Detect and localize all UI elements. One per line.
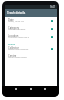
- button[interactable]: Location: [5, 33, 57, 41]
- staticText: Centre: [8, 54, 17, 58]
- staticText: Status: [8, 42, 16, 45]
- staticText: Mixed recyclables: [8, 28, 26, 31]
- staticText: Location: [8, 34, 19, 38]
- staticText: 9:41: [50, 5, 56, 9]
- staticText: Collector: [8, 46, 19, 50]
- button[interactable]: Collector: [5, 45, 57, 53]
- staticText: Trash details: [7, 11, 26, 15]
- staticText: North Valley facility: [8, 56, 27, 59]
- staticText: Green Earth Services: [8, 48, 29, 51]
- staticText: 1234 Elm Street Apt 5: [8, 36, 30, 39]
- staticText: Today, 10:45 AM: [8, 20, 24, 23]
- button[interactable]: Date: [5, 17, 57, 25]
- button[interactable]: Recent apps: [43, 87, 47, 91]
- staticText: Date: [8, 18, 14, 22]
- staticText: Category: [8, 26, 20, 30]
- button[interactable]: Back: [14, 87, 18, 91]
- button[interactable]: Category: [5, 25, 57, 33]
- button[interactable]: Centre: [5, 53, 57, 61]
- button[interactable]: Home: [29, 87, 33, 91]
